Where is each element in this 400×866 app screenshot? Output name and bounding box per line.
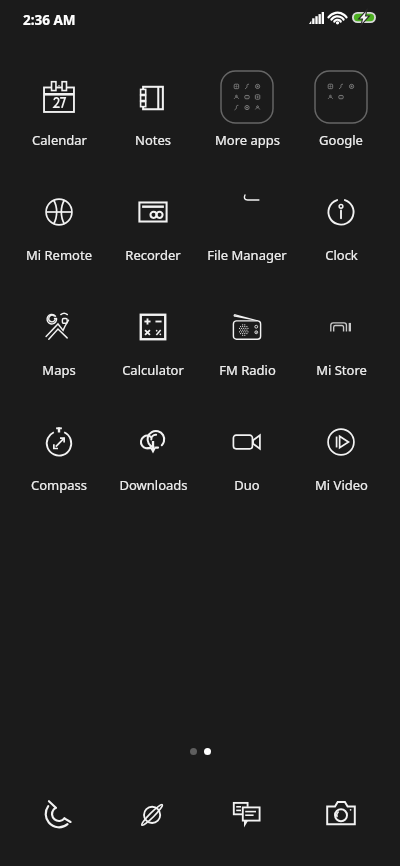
staticText: Mi Store: [316, 361, 367, 379]
button[interactable]: Camera: [294, 784, 388, 844]
button[interactable]: Mi Remote: [12, 171, 106, 286]
staticText: Calculator: [122, 361, 184, 379]
button[interactable]: File Manager: [200, 171, 294, 286]
button[interactable]: Duo: [200, 401, 294, 516]
button[interactable]: Phone: [12, 784, 106, 844]
button[interactable]: Google: [294, 56, 388, 171]
staticText: Clock: [325, 246, 358, 264]
button[interactable]: Clock: [294, 171, 388, 286]
staticText: More apps: [215, 131, 280, 149]
button[interactable]: Compass: [12, 401, 106, 516]
staticText: Downloads: [119, 476, 188, 494]
button[interactable]: Calendar: [12, 56, 106, 171]
staticText: 2:36 AM: [23, 11, 76, 29]
button[interactable]: Browser: [106, 784, 200, 844]
button[interactable]: Calculator: [106, 286, 200, 401]
staticText: Maps: [42, 361, 76, 379]
button[interactable]: Notes: [106, 56, 200, 171]
staticText: FM Radio: [219, 361, 276, 379]
staticText: Calendar: [32, 131, 87, 149]
button[interactable]: More apps: [200, 56, 294, 171]
staticText: Mi Remote: [26, 246, 92, 264]
staticText: Duo: [234, 476, 260, 494]
button[interactable]: Downloads: [106, 401, 200, 516]
button[interactable]: Mi Store: [294, 286, 388, 401]
button[interactable]: Mi Video: [294, 401, 388, 516]
button[interactable]: Messages: [200, 784, 294, 844]
button[interactable]: Maps: [12, 286, 106, 401]
staticText: Notes: [135, 131, 171, 149]
staticText: Compass: [31, 476, 87, 494]
button[interactable]: Recorder: [106, 171, 200, 286]
staticText: Google: [319, 131, 363, 149]
staticText: File Manager: [207, 246, 287, 264]
staticText: Mi Video: [315, 476, 368, 494]
staticText: Recorder: [125, 246, 181, 264]
button[interactable]: FM Radio: [200, 286, 294, 401]
